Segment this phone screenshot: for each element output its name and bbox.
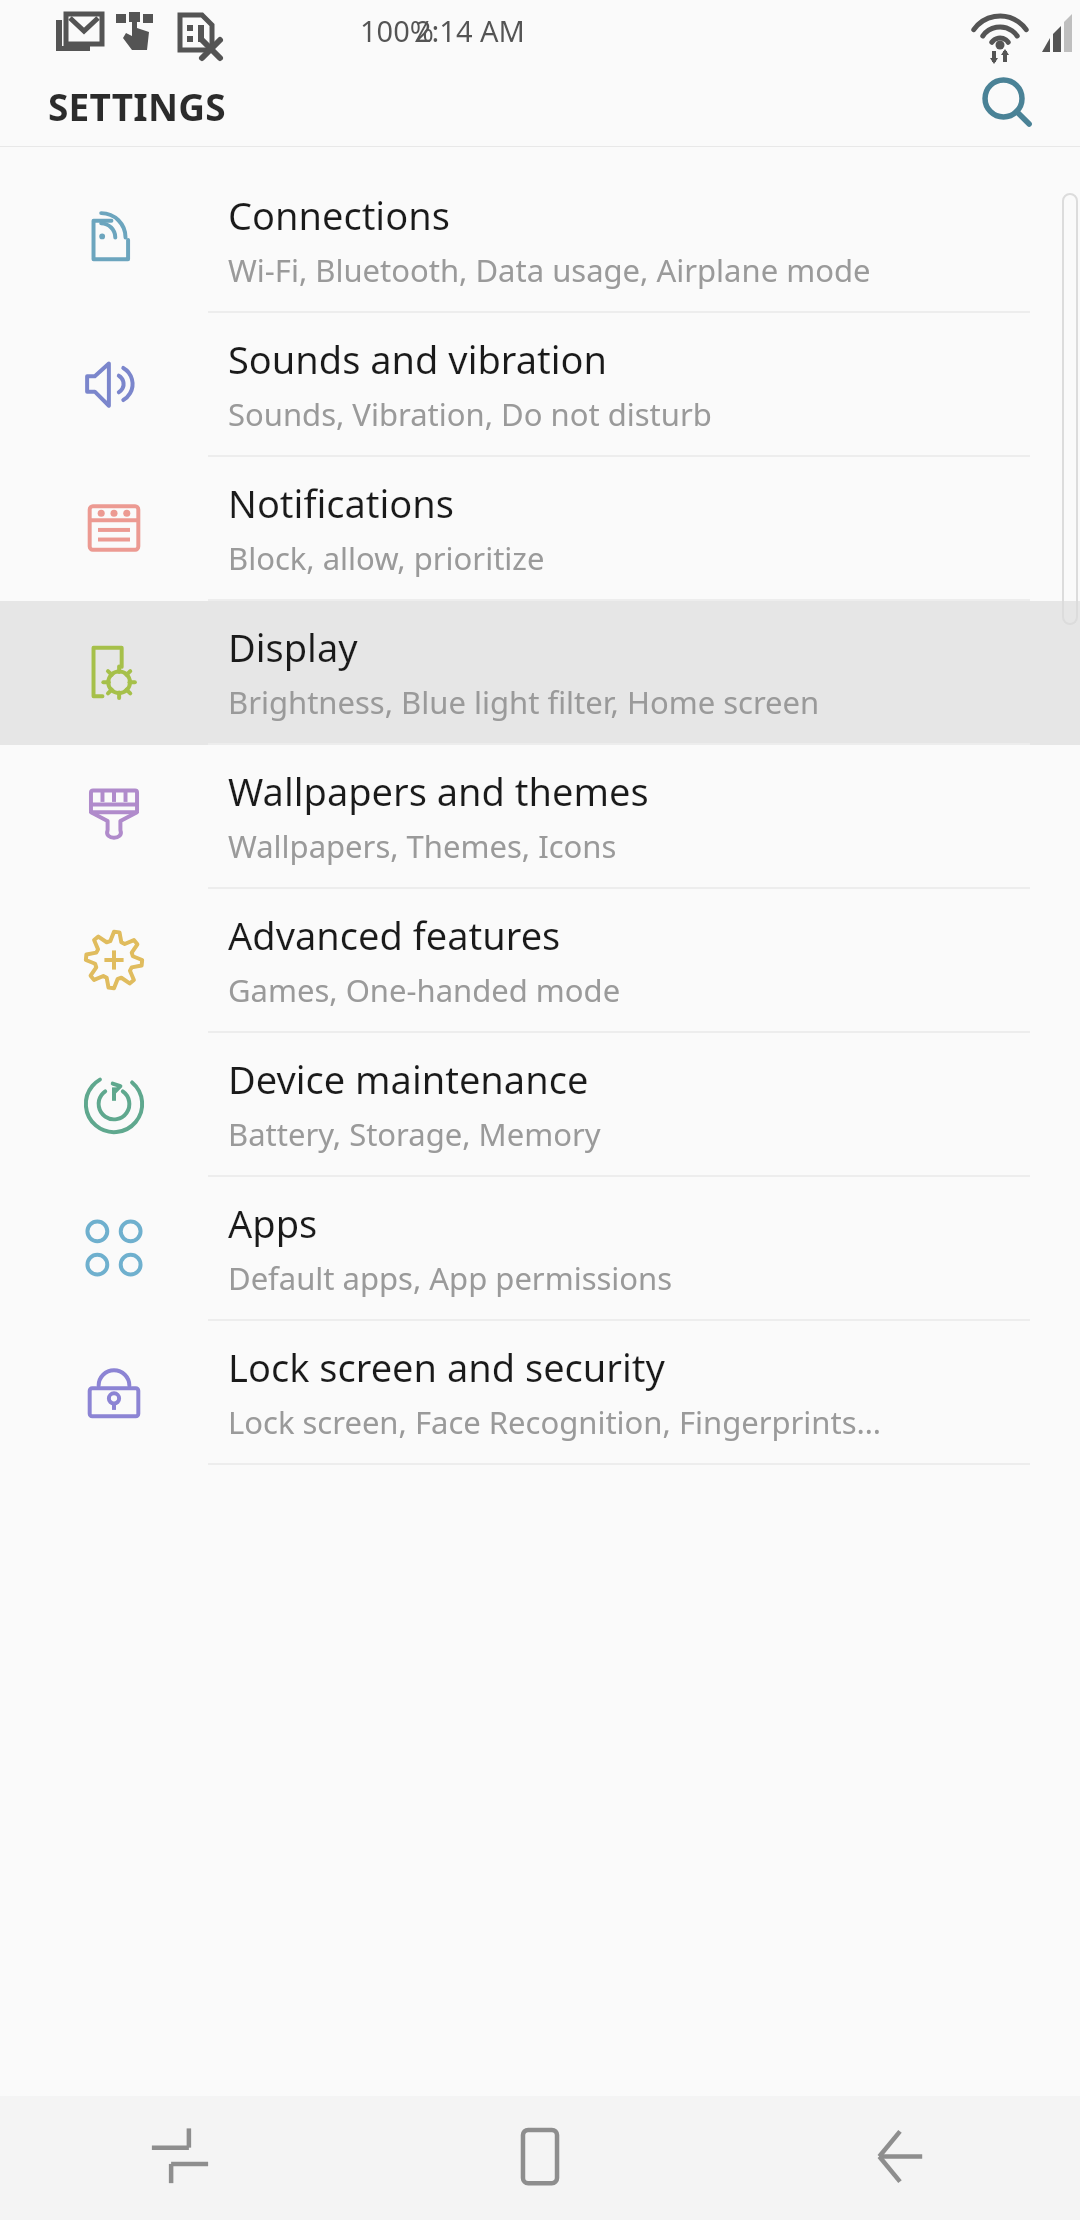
button[interactable]: Lock screen and security bbox=[0, 1321, 1080, 1465]
button[interactable]: Search bbox=[964, 62, 1052, 146]
staticText: Wallpapers and themes bbox=[228, 765, 649, 817]
staticText: Advanced features bbox=[228, 909, 561, 961]
staticText: Wallpapers, Themes, Icons bbox=[228, 825, 617, 867]
staticText: Connections bbox=[228, 189, 450, 241]
staticText: Notifications bbox=[228, 477, 455, 529]
button[interactable]: Back bbox=[720, 2096, 1080, 2220]
button[interactable]: Notifications bbox=[0, 457, 1080, 601]
staticText: Default apps, App permissions bbox=[228, 1257, 673, 1299]
staticText: Device maintenance bbox=[228, 1053, 589, 1105]
button[interactable]: Wallpapers and themes bbox=[0, 745, 1080, 889]
staticText: 100% bbox=[360, 11, 434, 50]
staticText: Sounds and vibration bbox=[228, 333, 608, 385]
button[interactable]: Home bbox=[360, 2096, 720, 2220]
staticText: Games, One-handed mode bbox=[228, 969, 621, 1011]
button[interactable]: Recents bbox=[0, 2096, 360, 2220]
staticText: 2:14 AM bbox=[415, 11, 525, 50]
staticText: Block, allow, prioritize bbox=[228, 537, 545, 579]
button[interactable]: Device maintenance bbox=[0, 1033, 1080, 1177]
button[interactable]: Connections bbox=[0, 169, 1080, 313]
staticText: Display bbox=[228, 621, 358, 673]
button[interactable]: Display bbox=[0, 601, 1080, 745]
button[interactable]: Apps bbox=[0, 1177, 1080, 1321]
staticText: Sounds, Vibration, Do not disturb bbox=[228, 393, 712, 435]
button[interactable]: Sounds and vibration bbox=[0, 313, 1080, 457]
staticText: SETTINGS bbox=[48, 81, 226, 131]
staticText: Apps bbox=[228, 1197, 318, 1249]
button[interactable]: Advanced features bbox=[0, 889, 1080, 1033]
staticText: Wi-Fi, Bluetooth, Data usage, Airplane m… bbox=[228, 249, 871, 291]
staticText: Battery, Storage, Memory bbox=[228, 1113, 601, 1155]
staticText: Lock screen, Face Recognition, Fingerpri… bbox=[228, 1401, 882, 1443]
staticText: Brightness, Blue light filter, Home scre… bbox=[228, 681, 820, 723]
staticText: Lock screen and security bbox=[228, 1341, 665, 1393]
